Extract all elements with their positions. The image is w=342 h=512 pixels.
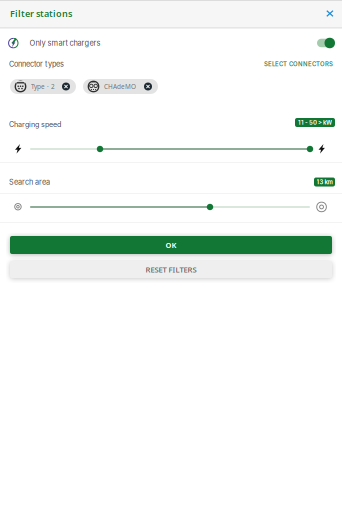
staticText: 13 km	[316, 178, 332, 186]
staticText: RESET FILTERS	[145, 264, 196, 275]
staticText: Filter stations	[10, 7, 72, 20]
button[interactable]: CHAdeMO	[83, 79, 158, 94]
button[interactable]: RESET FILTERS	[10, 261, 332, 278]
staticText: Only smart chargers	[29, 38, 100, 47]
staticText: Search area	[9, 178, 50, 186]
staticText: Type · 2	[31, 82, 55, 91]
staticText: Connector types	[9, 60, 64, 68]
button[interactable]: Type · 2	[10, 79, 76, 94]
staticText: SELECT CONNECTORS	[264, 60, 333, 68]
staticText: CHAdeMO	[104, 82, 136, 91]
button[interactable]: OK	[10, 236, 332, 254]
staticText: 11 - 50 > kW	[298, 119, 332, 126]
button[interactable]: Only smart chargers	[314, 33, 342, 53]
button[interactable]: Close	[320, 4, 340, 23]
button[interactable]: SELECT CONNECTORS	[263, 57, 334, 71]
staticText: OK	[165, 240, 176, 250]
staticText: Charging speed	[9, 120, 61, 129]
